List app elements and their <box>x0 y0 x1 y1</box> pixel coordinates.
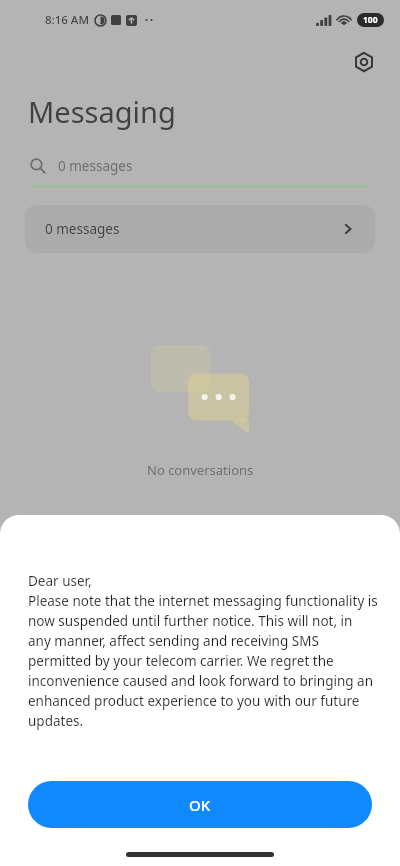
staticText: 0 messages <box>58 157 133 175</box>
staticText: 0 messages <box>45 220 120 238</box>
staticText: No conversations <box>147 461 254 479</box>
staticText: OK <box>189 795 211 815</box>
button[interactable]: Settings <box>346 44 382 80</box>
staticText: Messaging <box>28 92 176 131</box>
staticText: Dear user, Please note that the internet… <box>28 572 378 730</box>
button[interactable]: OK <box>28 781 372 828</box>
staticText: 100 <box>363 14 378 26</box>
staticText: 8:16 AM <box>45 12 89 28</box>
button[interactable]: 0 messages <box>30 153 370 179</box>
button[interactable]: 0 messages <box>25 205 375 253</box>
